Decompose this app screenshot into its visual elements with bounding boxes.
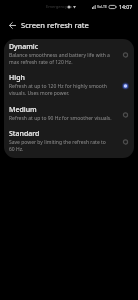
staticText: Balance smoothness and battery life with… (9, 52, 110, 65)
staticText: VoLTE (97, 4, 108, 9)
button[interactable]: Dynamic (4, 39, 134, 70)
button[interactable]: Back (5, 18, 19, 32)
staticText: 14:07 (119, 3, 133, 10)
staticText: Refresh at up to 120 Hz for highly smoot… (9, 83, 107, 96)
staticText: Screen refresh rate (21, 20, 89, 30)
staticText: Save power by limiting the refresh rate … (9, 139, 106, 152)
staticText: Refresh at up to 90 Hz for smoother visu… (9, 115, 112, 122)
button[interactable]: Medium (4, 102, 134, 126)
staticText: Medium (9, 105, 37, 115)
staticText: Dynamic (9, 42, 39, 52)
button[interactable]: High (4, 70, 134, 102)
staticText: High (9, 73, 25, 83)
button[interactable]: Standard (4, 126, 134, 158)
staticText: Standard (9, 129, 40, 139)
staticText: Emergency ca... (46, 4, 76, 9)
